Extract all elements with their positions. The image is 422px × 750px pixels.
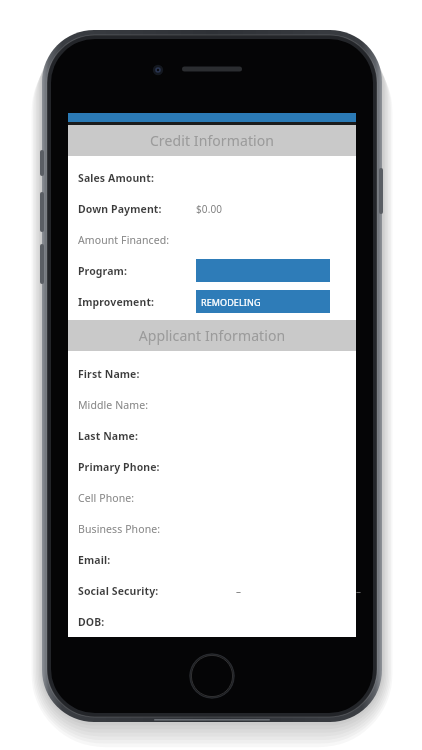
staticText: Applicant Information (68, 326, 356, 345)
button[interactable]: Sales Amount: (68, 162, 356, 193)
staticText: DOB: (78, 615, 196, 629)
staticText: Sales Amount: (78, 171, 196, 185)
button[interactable]: Social Security: (68, 575, 356, 606)
staticText: Program: (78, 264, 196, 278)
button[interactable]: First Name: (68, 358, 356, 389)
staticText: Credit Information (68, 131, 356, 150)
staticText: Primary Phone: (78, 460, 196, 474)
button[interactable]: DOB: (68, 606, 356, 637)
staticText: Cell Phone: (78, 491, 196, 505)
staticText: Business Phone: (78, 522, 196, 536)
staticText: Middle Name: (78, 398, 196, 412)
button[interactable]: Last Name: (68, 420, 356, 451)
staticText: Social Security: (78, 584, 196, 598)
staticText: REMODELING (201, 296, 330, 308)
button[interactable]: Email: (68, 544, 356, 575)
staticText: Amount Financed: (78, 233, 196, 247)
button[interactable]: Down Payment: (68, 193, 356, 224)
staticText: – (236, 584, 356, 598)
button[interactable]: Program: (68, 255, 356, 286)
button[interactable]: Home (189, 653, 235, 699)
button[interactable]: Improvement: (68, 286, 356, 317)
staticText: Improvement: (78, 295, 196, 309)
button[interactable]: Business Phone: (68, 513, 356, 544)
button[interactable]: Amount Financed: (68, 224, 356, 255)
staticText: Email: (78, 553, 196, 567)
staticText: First Name: (78, 367, 196, 381)
button[interactable]: Primary Phone: (68, 451, 356, 482)
staticText: Down Payment: (78, 202, 196, 216)
staticText: $0.00 (196, 202, 356, 216)
staticText: Last Name: (78, 429, 196, 443)
button[interactable]: Middle Name: (68, 389, 356, 420)
button[interactable]: Cell Phone: (68, 482, 356, 513)
